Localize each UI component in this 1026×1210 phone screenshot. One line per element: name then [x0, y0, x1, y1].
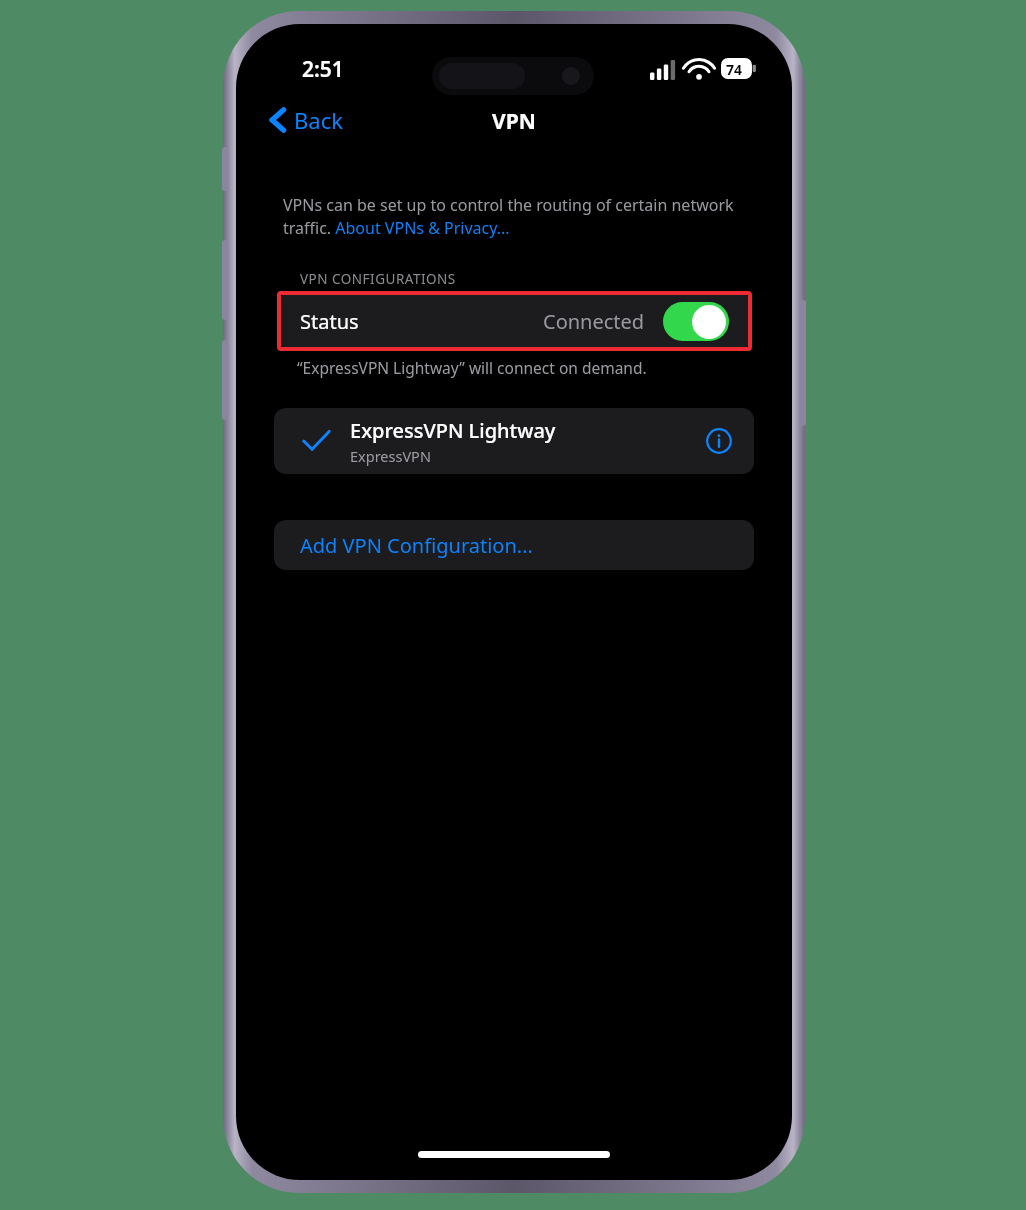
staticText: VPN CONFIGURATIONS	[300, 270, 456, 288]
staticText: 74	[726, 60, 743, 79]
staticText: Connected	[543, 308, 645, 335]
staticText: “ExpressVPN Lightway” will connect on de…	[297, 357, 647, 378]
staticText: VPN	[492, 107, 536, 136]
button[interactable]: Status	[281, 295, 748, 347]
button[interactable]: ExpressVPN Lightway	[274, 408, 754, 474]
staticText: Add VPN Configuration...	[300, 532, 533, 559]
staticText: VPNs can be set up to control the routin…	[283, 194, 743, 239]
staticText: Back	[294, 105, 343, 135]
staticText: ExpressVPN Lightway	[350, 417, 556, 444]
button[interactable]: VPN status toggle, on	[663, 302, 729, 341]
staticText: ExpressVPN	[350, 446, 431, 466]
button[interactable]: Back	[264, 98, 349, 142]
staticText: Status	[300, 308, 359, 335]
staticText: 2:51	[302, 55, 344, 84]
button[interactable]: More info about ExpressVPN Lightway	[702, 424, 736, 458]
button[interactable]: Add VPN Configuration...	[274, 520, 754, 570]
